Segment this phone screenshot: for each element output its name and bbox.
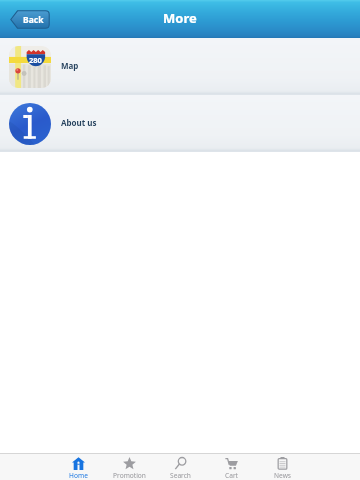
button[interactable]: Home [52,454,104,480]
button[interactable]: Back [10,10,50,29]
staticText: About us [61,117,97,128]
staticText: Back [23,14,44,26]
button[interactable]: Cart [206,454,257,480]
button[interactable]: Search [155,454,206,480]
staticText: 280 [29,55,42,65]
staticText: Search [170,471,191,480]
button[interactable]: About us [0,95,360,152]
button[interactable]: Promotion [104,454,155,480]
staticText: Map [61,60,79,71]
staticText: More [163,9,197,27]
staticText: Promotion [113,471,146,480]
staticText: Home [69,471,88,480]
staticText: Cart [225,471,238,480]
button[interactable]: 280 [0,38,360,95]
button[interactable]: News [257,454,308,480]
staticText: News [274,471,291,480]
